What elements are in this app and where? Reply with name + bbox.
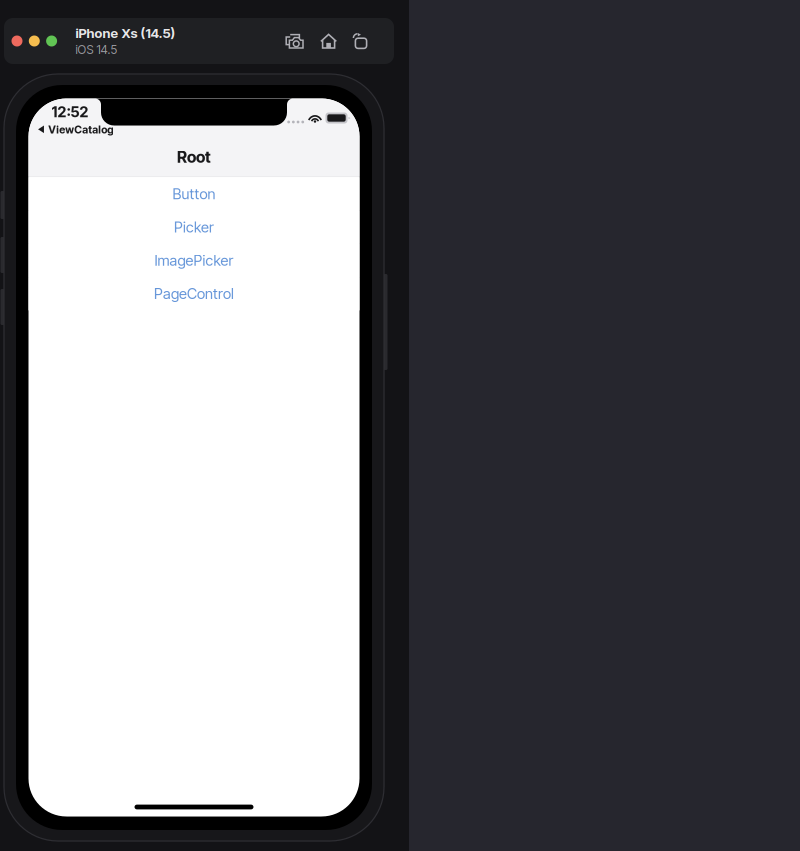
button[interactable]: ImagePicker <box>28 244 359 277</box>
staticText: Root <box>177 147 211 167</box>
button[interactable]: PageControl <box>28 277 359 310</box>
button[interactable]: Screenshot <box>285 33 305 49</box>
button[interactable]: Zoom window <box>46 35 57 46</box>
staticText: Picker <box>174 218 214 236</box>
staticText: iOS 14.5 <box>76 42 118 57</box>
button[interactable]: Home <box>320 33 337 49</box>
button[interactable]: Rotate device <box>352 33 368 49</box>
staticText: 12:52 <box>51 103 88 121</box>
staticText: ViewCatalog <box>48 123 113 136</box>
staticText: Button <box>172 185 215 203</box>
button[interactable]: Button <box>28 177 359 210</box>
button[interactable]: Close window <box>11 35 22 46</box>
button[interactable]: Minimize window <box>29 35 40 46</box>
staticText: ImagePicker <box>154 252 233 269</box>
button[interactable]: ViewCatalog <box>34 120 117 139</box>
button[interactable]: Picker <box>28 210 359 244</box>
staticText: PageControl <box>154 285 234 303</box>
staticText: iPhone Xs (14.5) <box>76 25 176 41</box>
